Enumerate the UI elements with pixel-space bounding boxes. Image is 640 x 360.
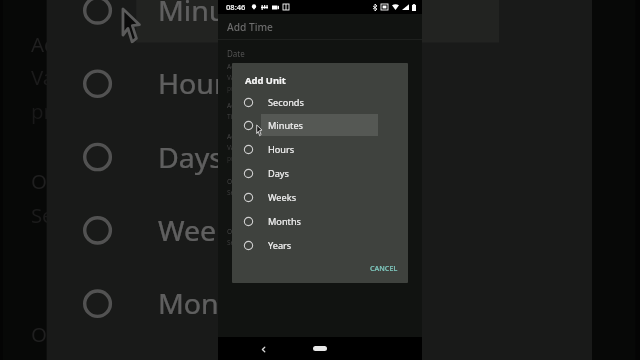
button[interactable]: Weeks (46, 192, 592, 265)
button[interactable]: Weeks (232, 185, 408, 209)
staticText: Years (158, 357, 232, 360)
staticText: Offset (227, 227, 246, 236)
button[interactable]: Months (232, 209, 408, 233)
staticText: Weeks (268, 191, 297, 204)
staticText: Seconds (31, 201, 111, 229)
staticText: Minutes (268, 119, 303, 132)
staticText: Added (227, 101, 248, 110)
button[interactable]: Hours (46, 45, 592, 119)
staticText: Days (268, 167, 289, 180)
button[interactable]: Seconds (232, 90, 408, 114)
button[interactable]: Home (313, 346, 327, 351)
staticText: 08:46 (226, 2, 246, 12)
staticText: Value (31, 64, 87, 91)
button[interactable]: Minutes (232, 113, 408, 137)
staticText: Seconds (268, 96, 304, 109)
staticText: Offset (31, 168, 90, 195)
staticText: Days (158, 137, 223, 177)
staticText: Date (227, 48, 245, 59)
staticText: Value (227, 143, 245, 152)
staticText: Months (268, 215, 301, 228)
button[interactable]: Hours (232, 137, 408, 161)
staticText: Seconds (227, 188, 253, 197)
button[interactable]: Months (46, 265, 592, 339)
staticText: presets (227, 154, 250, 163)
staticText: Add Unit (245, 74, 286, 87)
staticText: Hours (158, 64, 242, 104)
staticText: Added (227, 62, 248, 71)
staticText: Time (227, 112, 243, 121)
staticText: Years (268, 239, 292, 252)
staticText: Seconds (227, 238, 253, 247)
staticText: Offset (227, 177, 246, 186)
staticText: Weeks (158, 210, 248, 250)
button[interactable]: Back (258, 344, 268, 354)
staticText: Seconds (31, 354, 111, 360)
button[interactable]: Days (232, 161, 408, 185)
staticText: CANCEL (370, 263, 398, 273)
button[interactable]: Years (232, 233, 408, 257)
staticText: Minutes (158, 0, 266, 30)
staticText: Add Time (227, 20, 273, 34)
staticText: presets (227, 84, 250, 93)
staticText: Hours (268, 143, 295, 156)
staticText: Offset (31, 320, 90, 348)
staticText: Added (31, 30, 96, 58)
staticText: presets (31, 97, 102, 125)
button[interactable]: CANCEL (370, 263, 398, 273)
button[interactable]: Days (46, 119, 592, 192)
button[interactable]: Years (46, 339, 592, 360)
staticText: Months (158, 284, 260, 323)
button[interactable]: Minutes (46, 0, 592, 45)
staticText: Added (227, 132, 248, 141)
staticText: Value (227, 73, 245, 82)
